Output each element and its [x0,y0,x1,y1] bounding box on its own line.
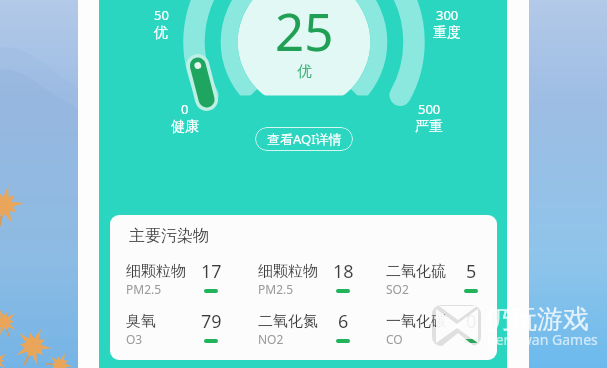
staticText: 优 [297,62,312,81]
staticText: 300 [436,6,459,24]
staticText: 17 [201,259,222,284]
staticText: O3 [126,331,143,347]
staticText: 25 [275,0,334,65]
staticText: 优 [154,24,168,42]
button[interactable]: 细颗粒物 [126,262,236,300]
staticText: 二氧化氮 [258,312,318,331]
staticText: 细颗粒物 [126,262,186,281]
button[interactable]: 二氧化氮 [258,312,368,350]
staticText: NO2 [258,331,284,347]
button[interactable]: 臭氧 [126,312,236,350]
button[interactable]: 一氧化碳 [386,312,496,350]
staticText: 0 [466,309,477,334]
staticText: PM2.5 [126,281,162,297]
staticText: 严重 [415,118,443,136]
staticText: 细颗粒物 [258,262,318,281]
button[interactable]: 二氧化硫 [386,262,496,300]
staticText: 一氧化碳 [386,312,446,331]
staticText: 二氧化硫 [386,262,446,281]
button[interactable]: 查看AQI详情 [255,127,353,151]
staticText: SO2 [386,281,409,297]
staticText: CO [386,331,403,347]
button[interactable]: 细颗粒物 [258,262,368,300]
staticText: 18 [333,259,354,284]
staticText: 臭氧 [126,312,156,331]
staticText: 6 [338,309,349,334]
staticText: 主要污染物 [129,226,209,246]
staticText: 仍玩游戏 [485,303,589,336]
staticText: 5 [466,259,477,284]
staticText: 查看AQI详情 [267,130,342,148]
staticText: 500 [418,100,441,118]
staticText: 重度 [433,24,461,42]
staticText: Rengwan Games [487,330,598,349]
staticText: 0 [181,100,189,118]
staticText: 79 [201,309,222,334]
staticText: 50 [154,6,169,24]
staticText: PM2.5 [258,281,294,297]
staticText: 健康 [171,118,199,136]
